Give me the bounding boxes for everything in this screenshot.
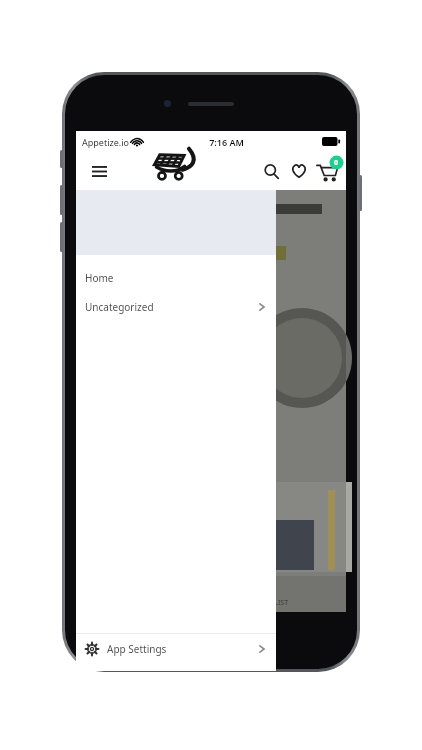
button[interactable]: App Settings <box>76 634 276 663</box>
button[interactable]: Uncategorized <box>76 292 276 321</box>
button[interactable]: Home <box>76 263 276 292</box>
button[interactable]: Cart, 0 items <box>313 157 341 185</box>
button[interactable]: Open navigation menu <box>84 156 114 186</box>
staticText: Appetize.io <box>82 136 129 148</box>
staticText: Home <box>85 271 114 285</box>
button[interactable]: Wishlist <box>285 157 313 185</box>
staticText: 7:16 AM <box>209 136 244 148</box>
staticText: WISHLIST <box>256 598 289 608</box>
staticText: Uncategorized <box>85 300 154 314</box>
staticText: 0 <box>334 158 339 168</box>
staticText: App Settings <box>107 642 167 656</box>
button[interactable]: Store logo, home <box>147 144 205 182</box>
button[interactable]: Search <box>257 157 285 185</box>
